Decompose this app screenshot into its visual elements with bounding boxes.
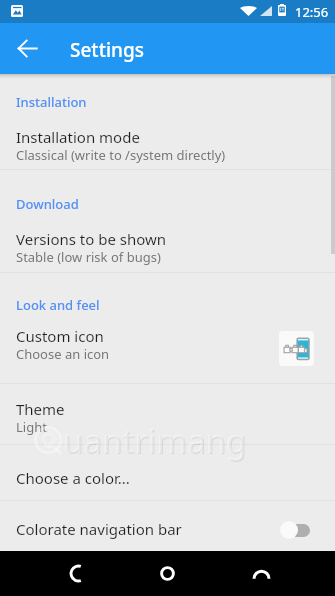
- staticText: Theme: [16, 399, 65, 419]
- button[interactable]: Colorate navigation bar: [280, 519, 312, 541]
- button[interactable]: [0, 501, 335, 551]
- button[interactable]: Recents: [237, 551, 285, 596]
- staticText: Installation: [16, 93, 87, 111]
- staticText: Classical (write to /system directly): [16, 146, 226, 164]
- button[interactable]: [0, 120, 335, 169]
- button[interactable]: [0, 320, 335, 383]
- staticText: uantrimang: [64, 419, 248, 464]
- staticText: Custom icon: [16, 326, 104, 346]
- staticText: Look and feel: [16, 296, 100, 314]
- button[interactable]: Custom icon: [279, 331, 314, 366]
- staticText: uantrimang: [63, 418, 247, 463]
- button[interactable]: Home: [143, 551, 191, 596]
- staticText: Versions to be shown: [16, 229, 167, 249]
- staticText: Colorate navigation bar: [16, 519, 182, 539]
- button[interactable]: Back: [54, 551, 102, 596]
- staticText: Settings: [70, 37, 144, 63]
- button[interactable]: [0, 445, 335, 500]
- button[interactable]: [0, 222, 335, 272]
- staticText: Installation mode: [16, 127, 140, 147]
- staticText: Choose an icon: [16, 345, 110, 363]
- button[interactable]: Back: [10, 31, 44, 65]
- staticText: Download: [16, 195, 79, 213]
- staticText: Light: [16, 418, 47, 436]
- staticText: Stable (low risk of bugs): [16, 248, 161, 266]
- staticText: 12:56: [295, 3, 329, 21]
- button[interactable]: [0, 384, 335, 444]
- staticText: Choose a color...: [16, 468, 130, 488]
